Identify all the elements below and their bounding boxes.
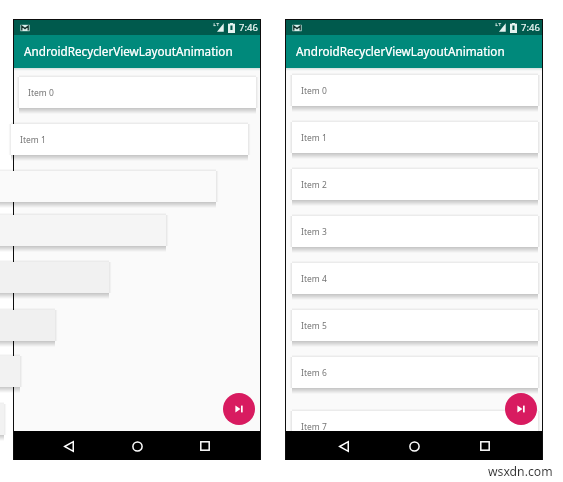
button[interactable]: Item 3 [292,216,538,247]
button[interactable]: Recents [472,433,498,459]
button[interactable]: Back [331,433,357,459]
button[interactable]: Item 4 [292,263,538,294]
button[interactable]: Skip next [505,393,537,425]
staticText: 7:46 [521,21,540,34]
staticText: Item 3 [301,226,327,238]
staticText: 7:46 [239,21,258,34]
button[interactable]: Back [56,433,82,459]
staticText: Item 4 [301,273,327,285]
button[interactable]: Home [124,433,150,459]
button[interactable]: Recents [192,433,218,459]
staticText: Item 5 [301,320,327,332]
button[interactable]: Item 6 [292,357,538,388]
button[interactable]: Skip next [223,393,255,425]
button[interactable]: Item 0 [292,75,538,106]
button[interactable]: Item 5 [292,310,538,341]
button[interactable]: Item 7 [292,411,538,442]
staticText: Item 0 [301,85,327,97]
staticText: Item 1 [20,134,46,146]
button[interactable]: Item 1 [292,122,538,153]
staticText: AndroidRecyclerViewLayoutAnimation [296,43,505,59]
staticText: Item 2 [301,179,327,191]
button[interactable]: Item 1 [11,124,248,155]
staticText: Item 0 [28,87,54,99]
staticText: Item 6 [301,367,327,379]
button[interactable]: Item 0 [19,77,256,108]
staticText: wsxdn.com [488,463,553,480]
staticText: AndroidRecyclerViewLayoutAnimation [24,43,233,59]
staticText: Item 7 [301,421,327,433]
button[interactable]: Home [401,433,427,459]
staticText: Item 1 [301,132,327,144]
button[interactable]: Item 2 [292,169,538,200]
